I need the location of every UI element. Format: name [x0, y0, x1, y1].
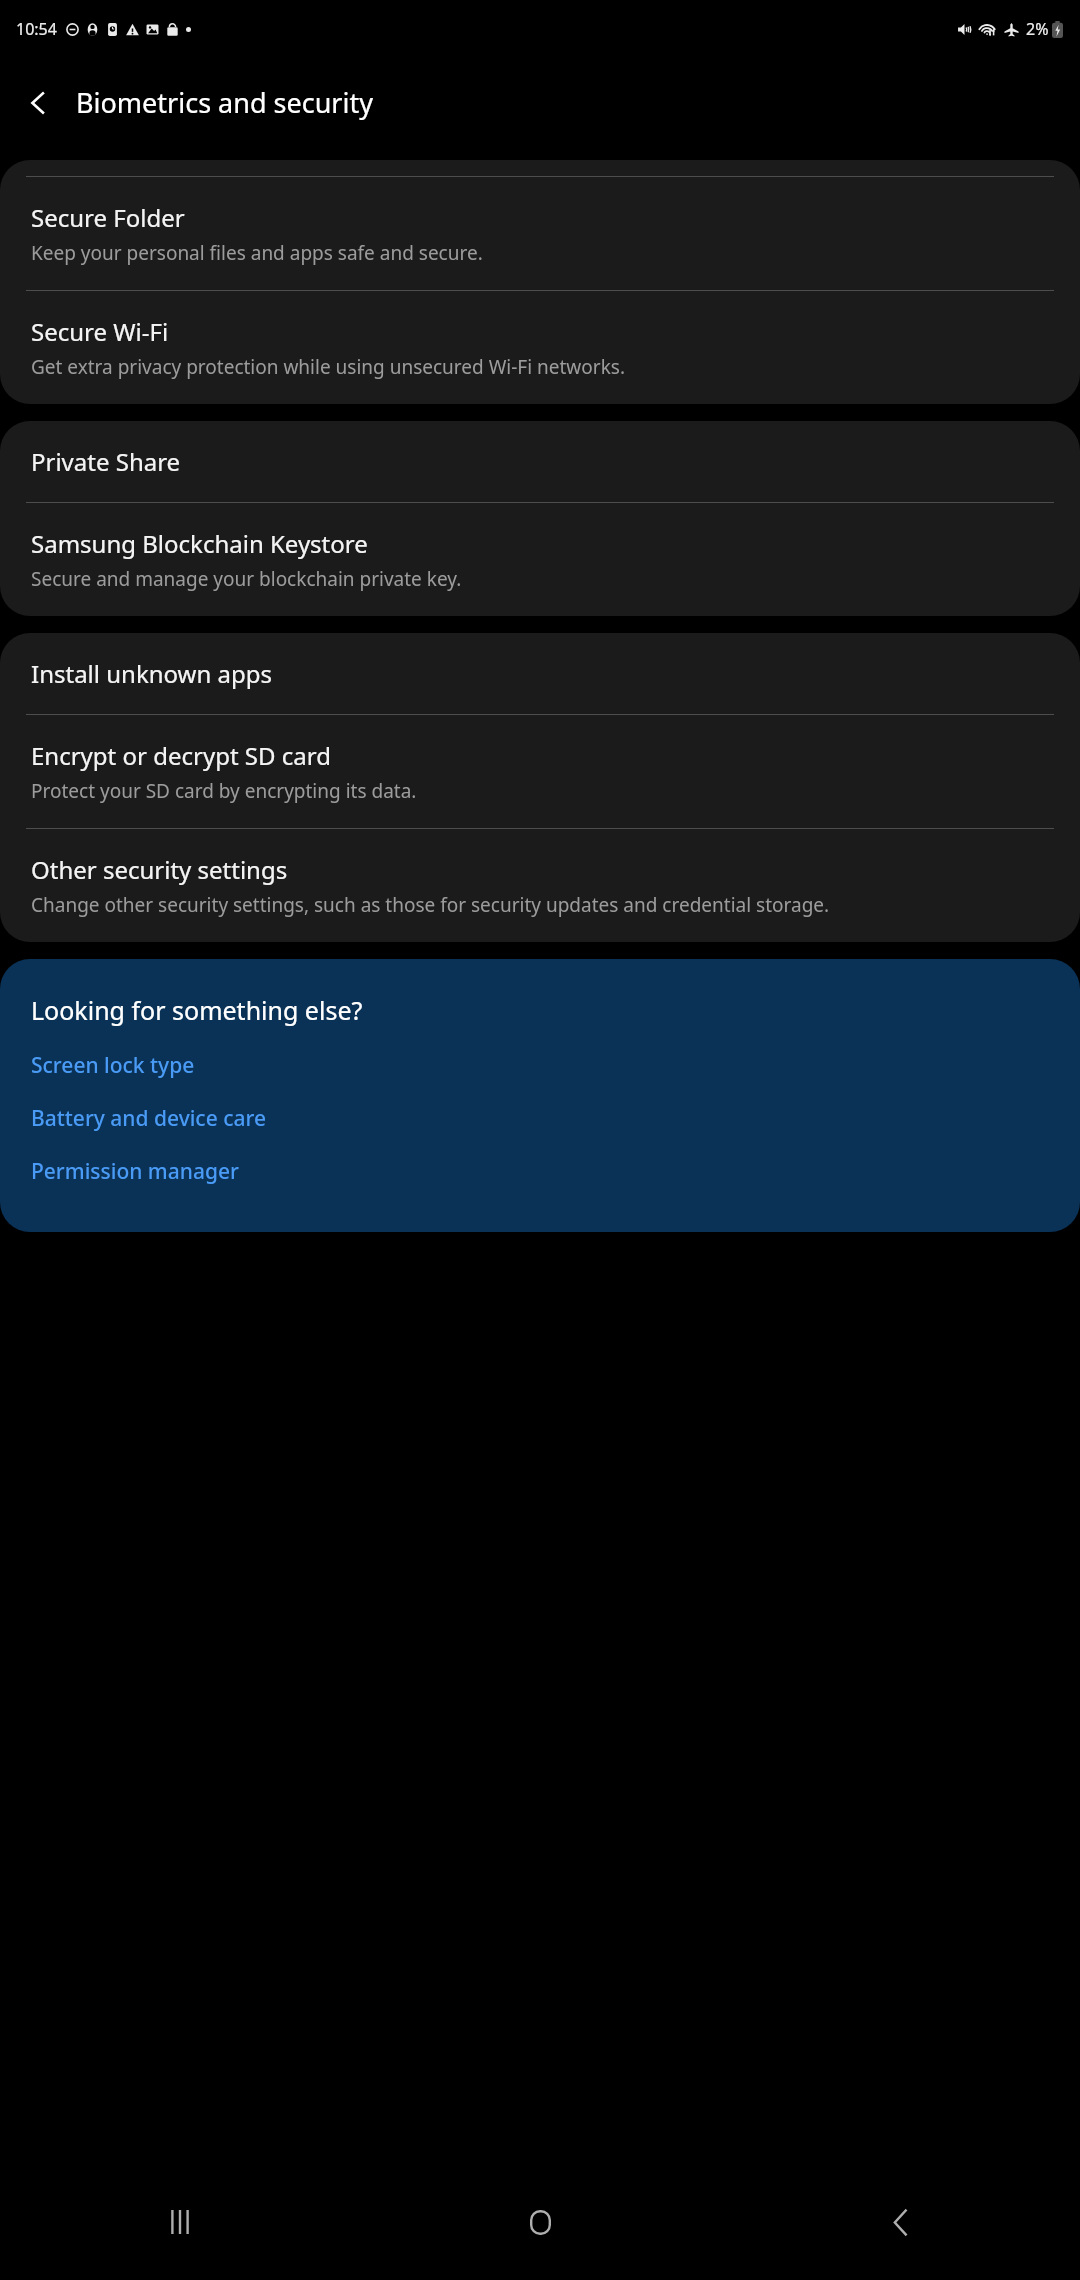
button[interactable]: Samsung Blockchain Keystore [0, 503, 1080, 616]
staticText: Install unknown apps [31, 657, 272, 690]
button[interactable]: Secure Wi-Fi [0, 291, 1080, 404]
staticText: Keep your personal files and apps safe a… [31, 240, 483, 266]
button[interactable]: Back [720, 2164, 1080, 2280]
staticText: Secure Folder [31, 201, 185, 234]
staticText: Screen lock type [31, 1051, 195, 1080]
staticText: 10:54 [16, 18, 57, 40]
button[interactable]: Screen lock type [0, 1039, 1080, 1092]
staticText: Battery and device care [31, 1104, 267, 1133]
staticText: Secure and manage your blockchain privat… [31, 566, 462, 592]
staticText: Change other security settings, such as … [31, 892, 830, 918]
button[interactable]: Encrypt or decrypt SD card [0, 715, 1080, 828]
button[interactable]: Other security settings [0, 829, 1080, 942]
button[interactable]: Home [360, 2164, 720, 2280]
staticText: Permission manager [31, 1157, 239, 1186]
button[interactable]: Install unknown apps [0, 633, 1080, 714]
button[interactable]: Permission manager [0, 1145, 1080, 1198]
staticText: Secure Wi-Fi [31, 315, 169, 348]
button[interactable]: Private Share [0, 421, 1080, 502]
staticText: 2% [1026, 18, 1049, 40]
staticText: Encrypt or decrypt SD card [31, 739, 331, 772]
button[interactable]: Secure Folder [0, 177, 1080, 290]
staticText: Other security settings [31, 853, 288, 886]
button[interactable]: Recent apps [0, 2164, 360, 2280]
staticText: Biometrics and security [76, 84, 373, 121]
button[interactable]: Back [11, 75, 67, 131]
staticText: Samsung Blockchain Keystore [31, 527, 368, 560]
staticText: Private Share [31, 445, 181, 478]
staticText: Looking for something else? [31, 993, 363, 1027]
button[interactable]: Battery and device care [0, 1092, 1080, 1145]
staticText: Get extra privacy protection while using… [31, 354, 625, 380]
staticText: Protect your SD card by encrypting its d… [31, 778, 417, 804]
